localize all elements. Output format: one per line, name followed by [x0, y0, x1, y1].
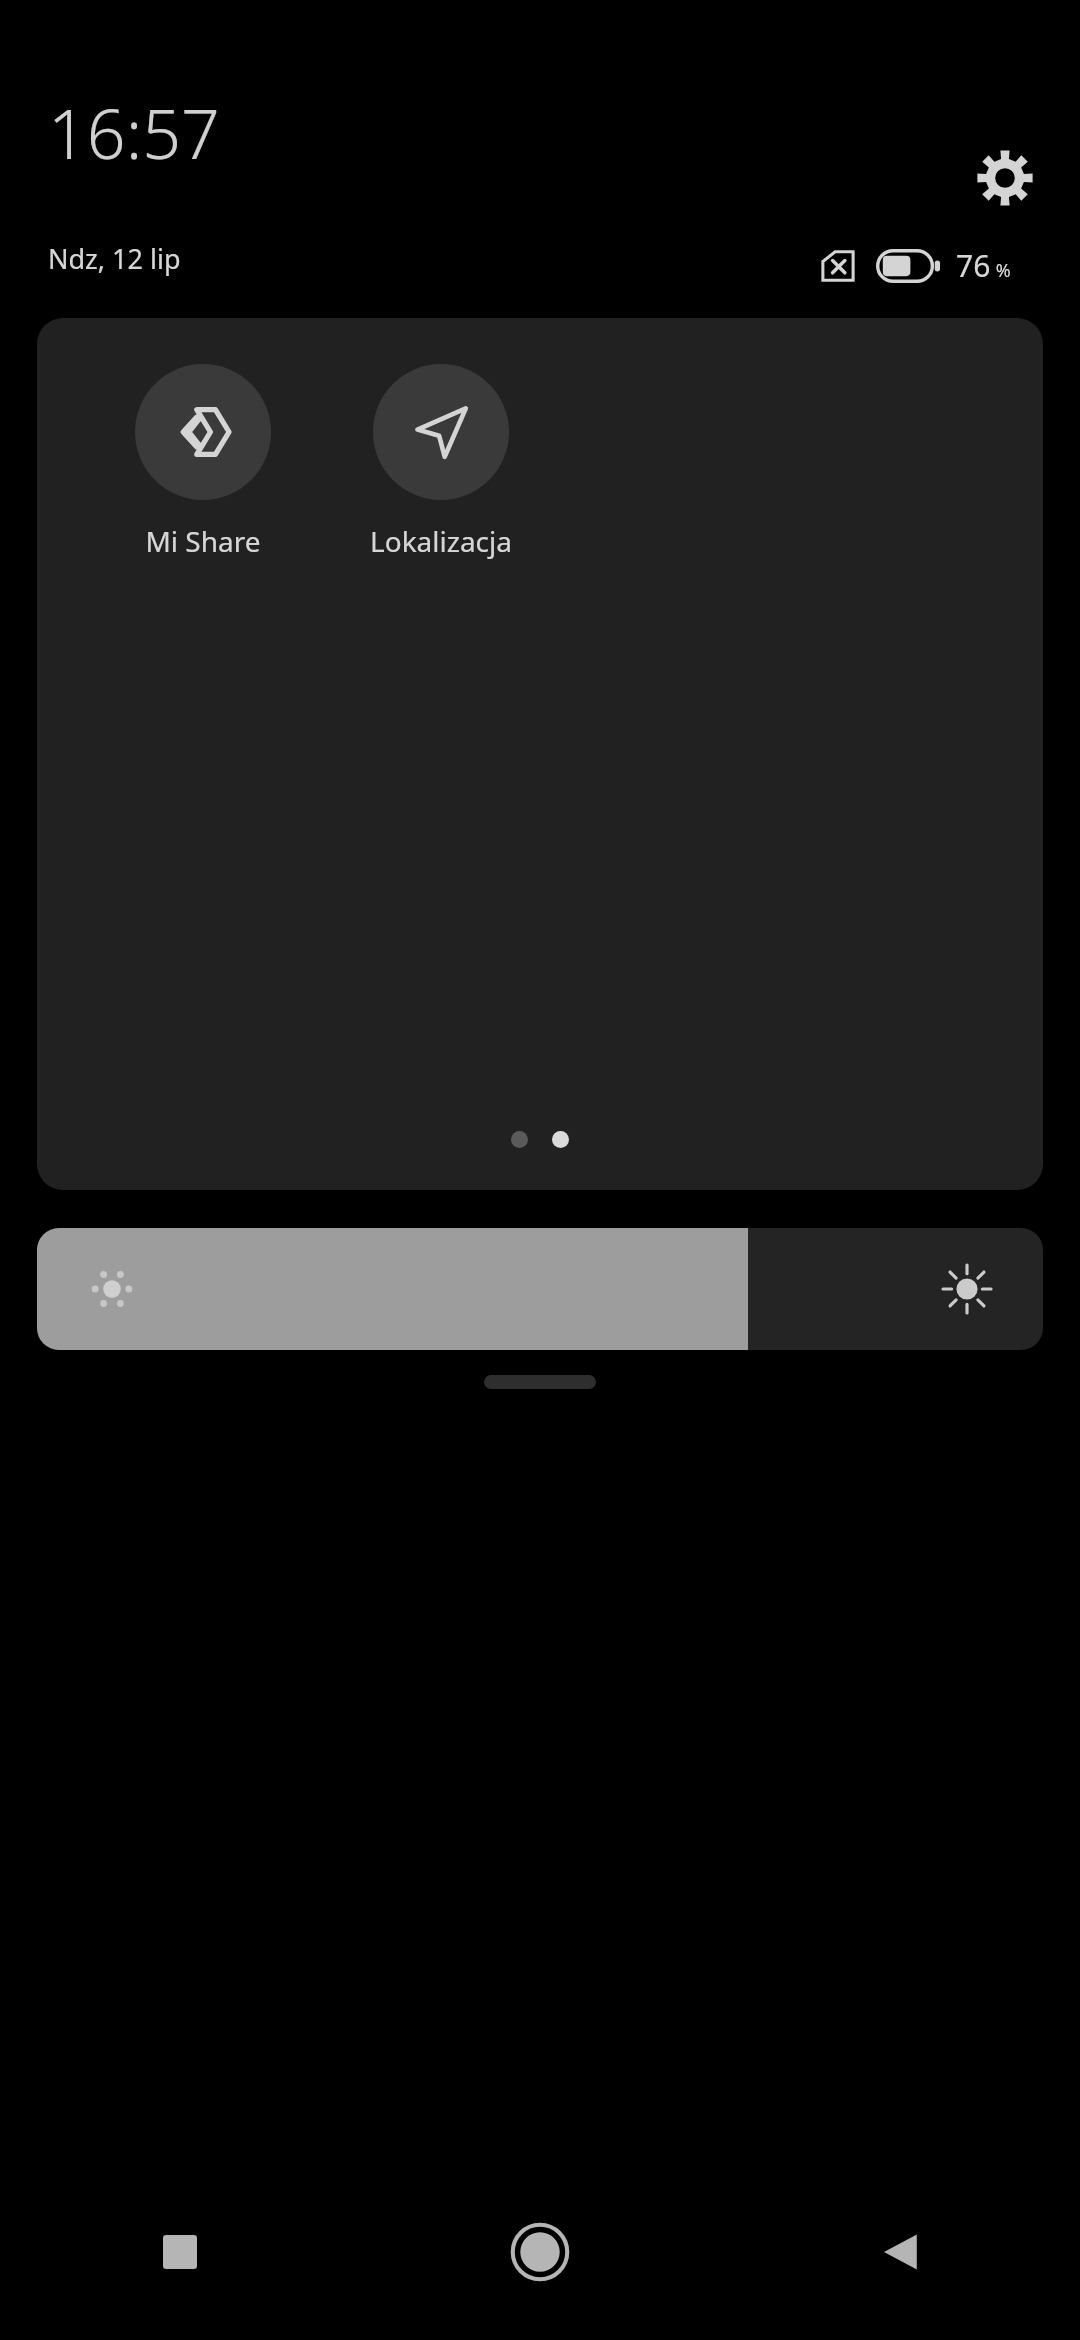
button[interactable]: Home: [492, 2204, 588, 2300]
button[interactable]: Mi Share: [103, 364, 303, 560]
staticText: 76: [956, 245, 991, 286]
staticText: 16:57: [48, 86, 220, 179]
staticText: Mi Share: [145, 522, 261, 560]
button[interactable]: Lokalizacja: [341, 364, 541, 560]
button[interactable]: Back: [852, 2204, 948, 2300]
staticText: Ndz, 12 lip: [48, 240, 181, 277]
button[interactable]: Recents: [132, 2204, 228, 2300]
staticText: Lokalizacja: [370, 522, 512, 560]
button[interactable]: Expand: [484, 1375, 596, 1389]
staticText: %: [991, 258, 1011, 283]
button[interactable]: Settings: [963, 136, 1047, 220]
button[interactable]: Brightness: [37, 1228, 1043, 1350]
